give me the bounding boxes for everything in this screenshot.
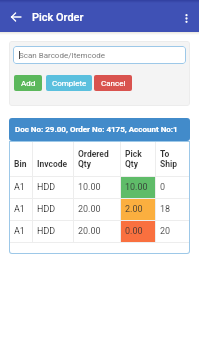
staticText: Complete	[52, 79, 87, 88]
staticText: Bin	[14, 159, 27, 169]
staticText: Pick Qty	[125, 149, 142, 169]
staticText: To Ship	[160, 149, 178, 169]
button[interactable]: Complete	[46, 75, 92, 91]
staticText: 10.00	[78, 182, 101, 193]
button[interactable]: More options	[176, 8, 196, 28]
staticText: 20.00	[78, 226, 101, 237]
button[interactable]: Scan Barcode/Itemcode	[13, 46, 186, 64]
staticText: 18	[160, 204, 171, 215]
button[interactable]: Cancel	[94, 75, 132, 91]
staticText: Pick Order	[32, 11, 84, 24]
staticText: A1	[14, 182, 25, 193]
staticText: Add	[21, 79, 36, 88]
button[interactable]: Add	[14, 75, 42, 91]
staticText: Invcode	[37, 159, 68, 169]
staticText: A1	[14, 204, 25, 215]
button[interactable]: Back	[7, 8, 25, 26]
staticText: 0.00	[125, 226, 143, 237]
staticText: 10.00	[125, 182, 148, 193]
staticText: Ordered Qty	[78, 149, 109, 169]
staticText: HDD	[37, 226, 56, 237]
staticText: 2.00	[125, 204, 143, 215]
staticText: HDD	[37, 204, 56, 215]
button[interactable]: Doc No: 29.00, Order No: 4175, Account N…	[9, 118, 190, 141]
staticText: HDD	[37, 182, 56, 193]
staticText: 20	[160, 226, 171, 237]
staticText: Doc No: 29.00, Order No: 4175, Account N…	[15, 125, 178, 134]
staticText: A1	[14, 226, 25, 237]
staticText: 20.00	[78, 204, 101, 215]
staticText: Cancel	[101, 79, 126, 88]
staticText: Scan Barcode/Itemcode	[19, 51, 106, 60]
staticText: 0	[160, 182, 166, 193]
